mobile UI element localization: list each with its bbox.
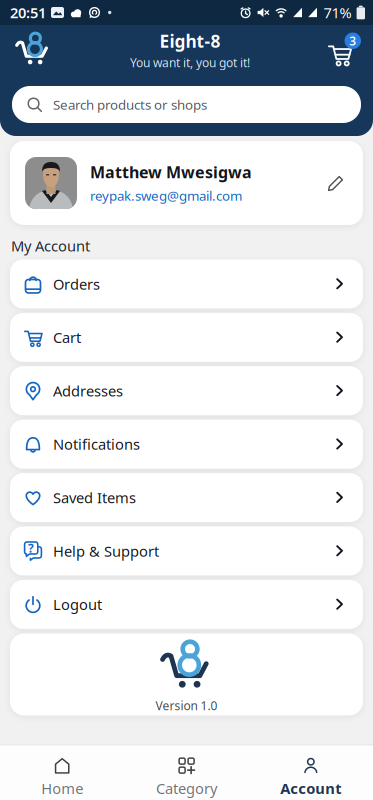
staticText: Notifications — [53, 434, 140, 454]
button[interactable]: Edit profile — [0, 141, 373, 225]
button[interactable]: Saved Items — [0, 473, 373, 522]
button[interactable]: Notifications — [0, 420, 373, 469]
staticText: Help & Support — [53, 541, 159, 561]
staticText: Logout — [53, 595, 102, 614]
staticText: Eight-8 — [159, 29, 220, 52]
staticText: Addresses — [53, 381, 123, 400]
button[interactable]: Logout — [0, 580, 373, 629]
button[interactable]: Category — [124, 745, 249, 800]
button[interactable]: Account — [249, 745, 373, 800]
staticText: Category — [156, 778, 217, 798]
staticText: Cart — [53, 328, 81, 347]
button[interactable]: Addresses — [0, 366, 373, 415]
button[interactable]: Eight-8 home — [0, 29, 54, 71]
staticText: Home — [41, 778, 83, 798]
staticText: 71% — [324, 3, 352, 22]
button[interactable]: Cart — [0, 313, 373, 362]
staticText: You want it, you got it! — [130, 54, 250, 70]
button[interactable]: Search products or shops — [0, 71, 373, 123]
staticText: Account — [280, 778, 341, 798]
staticText: 20:51 — [10, 3, 46, 22]
staticText: Version 1.0 — [155, 697, 217, 713]
button[interactable]: Orders — [0, 259, 373, 308]
button[interactable]: Cart, 3 items — [326, 32, 373, 67]
staticText: Matthew Mwesigwa — [90, 161, 252, 183]
staticText: Orders — [53, 274, 100, 294]
staticText: My Account — [11, 236, 90, 255]
staticText: reypak.sweg@gmail.com — [90, 187, 242, 204]
staticText: ? — [28, 540, 34, 556]
button[interactable]: Home — [0, 745, 124, 800]
button[interactable]: ? — [0, 526, 373, 575]
staticText: Search products or shops — [53, 96, 207, 113]
staticText: Saved Items — [53, 488, 136, 507]
staticText: 3 — [349, 33, 356, 49]
